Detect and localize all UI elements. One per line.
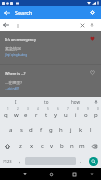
staticText: s — [20, 126, 23, 134]
staticText: …zài nǎlǐ? — [5, 87, 20, 91]
staticText: l — [90, 126, 92, 134]
button[interactable]: 2 — [11, 106, 21, 122]
staticText: to — [44, 99, 49, 105]
staticText: u — [64, 111, 68, 119]
button[interactable]: Voice search — [87, 19, 97, 31]
button[interactable]: d — [26, 122, 36, 138]
staticText: r — [35, 111, 38, 119]
staticText: 7 — [67, 107, 69, 111]
staticText: o — [84, 111, 88, 119]
button[interactable]: l — [86, 122, 96, 138]
button[interactable]: Delete — [87, 138, 101, 154]
button[interactable]: n — [67, 138, 77, 154]
button[interactable]: I — [0, 97, 31, 106]
staticText: 2 — [17, 107, 19, 111]
button[interactable]: 7 — [61, 106, 71, 122]
button[interactable]: 3 — [21, 106, 31, 122]
button[interactable]: z — [15, 138, 26, 154]
staticText: p — [94, 111, 98, 119]
button[interactable]: v — [47, 138, 57, 154]
staticText: f — [40, 126, 43, 134]
staticText: q — [4, 111, 8, 119]
staticText: 8 — [77, 107, 79, 111]
button[interactable]: 8 — [71, 106, 81, 122]
staticText: k — [79, 126, 83, 134]
staticText: m — [79, 142, 85, 150]
staticText: j — [70, 126, 72, 134]
staticText: e — [24, 111, 28, 119]
staticText: v — [50, 142, 54, 150]
button[interactable]: Home — [45, 168, 57, 180]
staticText: 4 — [37, 107, 39, 111]
staticText: 紧急情况 — [5, 46, 21, 51]
button[interactable]: how — [61, 97, 91, 106]
staticText: 6 — [57, 107, 59, 111]
button[interactable]: s — [16, 122, 26, 138]
button[interactable]: Conversation mode — [85, 110, 97, 122]
button[interactable]: to — [31, 97, 61, 106]
button[interactable]: b — [57, 138, 67, 154]
button[interactable]: Recent apps — [68, 168, 80, 180]
staticText: how — [71, 99, 81, 105]
staticText: 1 — [7, 107, 9, 111]
button[interactable]: 1 — [0, 106, 11, 122]
staticText: w — [14, 111, 19, 119]
staticText: c — [41, 142, 44, 150]
button[interactable]: Back — [0, 19, 12, 31]
button[interactable]: Where is …? — [0, 65, 101, 97]
staticText: a — [9, 126, 13, 134]
button[interactable]: 4 — [31, 106, 41, 122]
staticText: d — [29, 126, 33, 134]
button[interactable]: Search — [89, 157, 98, 166]
staticText: 5 — [47, 107, 49, 111]
button[interactable]: a — [5, 122, 16, 138]
button[interactable]: 5 — [41, 106, 51, 122]
button[interactable]: 6 — [51, 106, 61, 122]
button[interactable]: x — [26, 138, 37, 154]
button[interactable]: h — [56, 122, 66, 138]
staticText: jǐnjí qíngkuàng — [5, 53, 28, 57]
button[interactable]: Voice input — [91, 97, 101, 106]
button[interactable]: ?123 — [0, 154, 15, 168]
staticText: I — [15, 99, 17, 105]
button[interactable]: Remove from favourites — [87, 33, 98, 44]
staticText: 3 — [27, 107, 29, 111]
staticText: , — [19, 158, 21, 165]
button[interactable]: , — [15, 154, 25, 168]
button[interactable]: m — [77, 138, 87, 154]
staticText: 0 — [97, 107, 99, 111]
button[interactable]: Add to favourites — [87, 67, 98, 78]
button[interactable]: f — [36, 122, 46, 138]
button[interactable]: Clear query — [77, 19, 87, 31]
staticText: g — [49, 126, 53, 134]
button[interactable]: c — [37, 138, 47, 154]
staticText: y — [54, 111, 58, 119]
staticText: Where is …? — [5, 71, 26, 76]
button[interactable]: Shift — [0, 138, 15, 154]
staticText: . — [80, 158, 82, 165]
button[interactable]: g — [46, 122, 56, 138]
button[interactable]: Switch keyboard — [86, 168, 98, 180]
staticText: It's an emergency — [5, 37, 36, 42]
button[interactable]: j — [66, 122, 76, 138]
button[interactable]: Hide keyboard — [19, 168, 31, 180]
button[interactable]: Navigate up — [0, 6, 13, 19]
staticText: i — [75, 111, 77, 119]
button[interactable]: k — [76, 122, 86, 138]
staticText: h — [59, 126, 63, 134]
staticText: ?123 — [3, 159, 12, 164]
staticText: Search — [15, 9, 33, 16]
staticText: x — [30, 142, 34, 150]
button[interactable]: 9 — [81, 106, 91, 122]
button[interactable]: 0 — [91, 106, 101, 122]
staticText: z — [19, 142, 22, 150]
button[interactable]: It's an emergency — [0, 31, 101, 64]
button[interactable]: Settings — [86, 6, 99, 19]
staticText: n — [70, 142, 74, 150]
staticText: …在哪里? — [5, 80, 22, 85]
button[interactable]: . — [76, 154, 86, 168]
staticText: b — [60, 142, 64, 150]
staticText: t — [45, 111, 48, 119]
staticText: 9 — [87, 107, 89, 111]
